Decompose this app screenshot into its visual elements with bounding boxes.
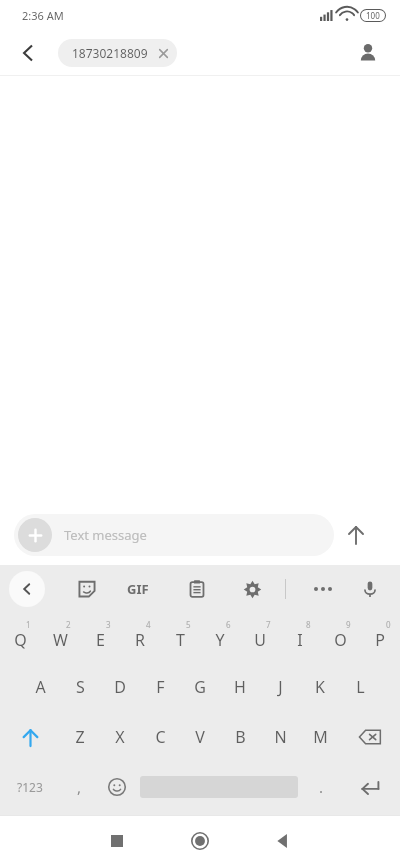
staticText: 2:36 AM (22, 8, 64, 23)
staticText: P (375, 629, 385, 651)
staticText: 5 (186, 619, 191, 630)
staticText: I (297, 629, 303, 651)
button[interactable]: F (140, 662, 180, 712)
button[interactable]: Backspace (340, 712, 400, 762)
button[interactable]: Add attachment (14, 514, 334, 556)
button[interactable]: N (260, 712, 300, 762)
button[interactable]: C (140, 712, 180, 762)
staticText: U (254, 629, 266, 651)
button[interactable]: B (220, 712, 260, 762)
button[interactable]: G (180, 662, 220, 712)
button[interactable]: More options (303, 569, 343, 609)
staticText: 8 (306, 619, 311, 630)
staticText: Q (14, 629, 27, 651)
staticText: GIF (127, 580, 149, 598)
staticText: , (77, 777, 82, 797)
staticText: H (234, 676, 246, 698)
staticText: K (315, 676, 325, 698)
button[interactable]: Y (200, 612, 240, 662)
button[interactable]: Add attachment (18, 518, 52, 552)
button[interactable]: U (240, 612, 280, 662)
staticText: 1 (26, 619, 31, 630)
staticText: ?123 (17, 779, 43, 795)
staticText: J (278, 676, 283, 698)
staticText: 2 (66, 619, 71, 630)
staticText: E (96, 629, 105, 651)
button[interactable]: Stickers (68, 570, 106, 608)
staticText: W (53, 629, 68, 651)
staticText: 100 (366, 10, 380, 21)
button[interactable]: 18730218809 (58, 39, 177, 67)
button[interactable]: H (220, 662, 260, 712)
staticText: Text message (64, 526, 147, 544)
button[interactable]: Home (176, 817, 224, 865)
staticText: L (356, 676, 365, 698)
staticText: C (155, 726, 166, 748)
button[interactable]: K (300, 662, 340, 712)
staticText: Z (75, 726, 85, 748)
button[interactable]: Space (136, 762, 302, 812)
button[interactable]: Enter (340, 762, 400, 812)
button[interactable]: GIF (117, 568, 159, 610)
staticText: . (319, 777, 324, 797)
button[interactable]: Send (334, 513, 378, 557)
staticText: Y (215, 629, 225, 651)
button[interactable]: , (60, 762, 98, 812)
staticText: G (194, 676, 206, 698)
button[interactable]: T (160, 612, 200, 662)
staticText: V (195, 726, 205, 748)
button[interactable]: E (80, 612, 120, 662)
staticText: 4 (146, 619, 151, 630)
button[interactable]: L (340, 662, 380, 712)
button[interactable]: Z (60, 712, 100, 762)
staticText: 9 (346, 619, 351, 630)
button[interactable]: P (360, 612, 400, 662)
staticText: F (156, 676, 165, 698)
button[interactable]: A (20, 662, 60, 712)
button[interactable]: Collapse toolbar (9, 571, 45, 607)
button[interactable]: V (180, 712, 220, 762)
button[interactable]: Emoji (98, 762, 136, 812)
button[interactable]: Contact (348, 33, 388, 73)
button[interactable]: ?123 (0, 762, 60, 812)
staticText: T (176, 629, 185, 651)
staticText: 18730218809 (72, 45, 148, 61)
button[interactable]: O (320, 612, 360, 662)
staticText: N (274, 726, 287, 748)
button[interactable]: J (260, 662, 300, 712)
button[interactable]: W (40, 612, 80, 662)
button[interactable]: Clipboard (178, 570, 216, 608)
button[interactable]: Back (259, 817, 307, 865)
staticText: 0 (386, 619, 391, 630)
staticText: D (114, 676, 126, 698)
button[interactable]: R (120, 612, 160, 662)
button[interactable]: Recents (93, 817, 141, 865)
button[interactable]: Settings (233, 570, 271, 608)
button[interactable]: Voice input (350, 569, 390, 609)
button[interactable]: . (302, 762, 340, 812)
button[interactable]: S (60, 662, 100, 712)
staticText: S (76, 676, 85, 698)
button[interactable]: Shift (0, 712, 60, 762)
button[interactable]: X (100, 712, 140, 762)
staticText: B (235, 726, 246, 748)
button[interactable]: M (300, 712, 340, 762)
button[interactable]: Q (0, 612, 40, 662)
staticText: R (135, 629, 145, 651)
staticText: X (115, 726, 125, 748)
staticText: 7 (266, 619, 271, 630)
button[interactable]: Back (8, 33, 48, 73)
button[interactable]: I (280, 612, 320, 662)
staticText: 3 (106, 619, 111, 630)
button[interactable]: D (100, 662, 140, 712)
staticText: A (35, 676, 46, 698)
staticText: M (313, 726, 328, 748)
staticText: 6 (226, 619, 231, 630)
staticText: O (334, 629, 347, 651)
